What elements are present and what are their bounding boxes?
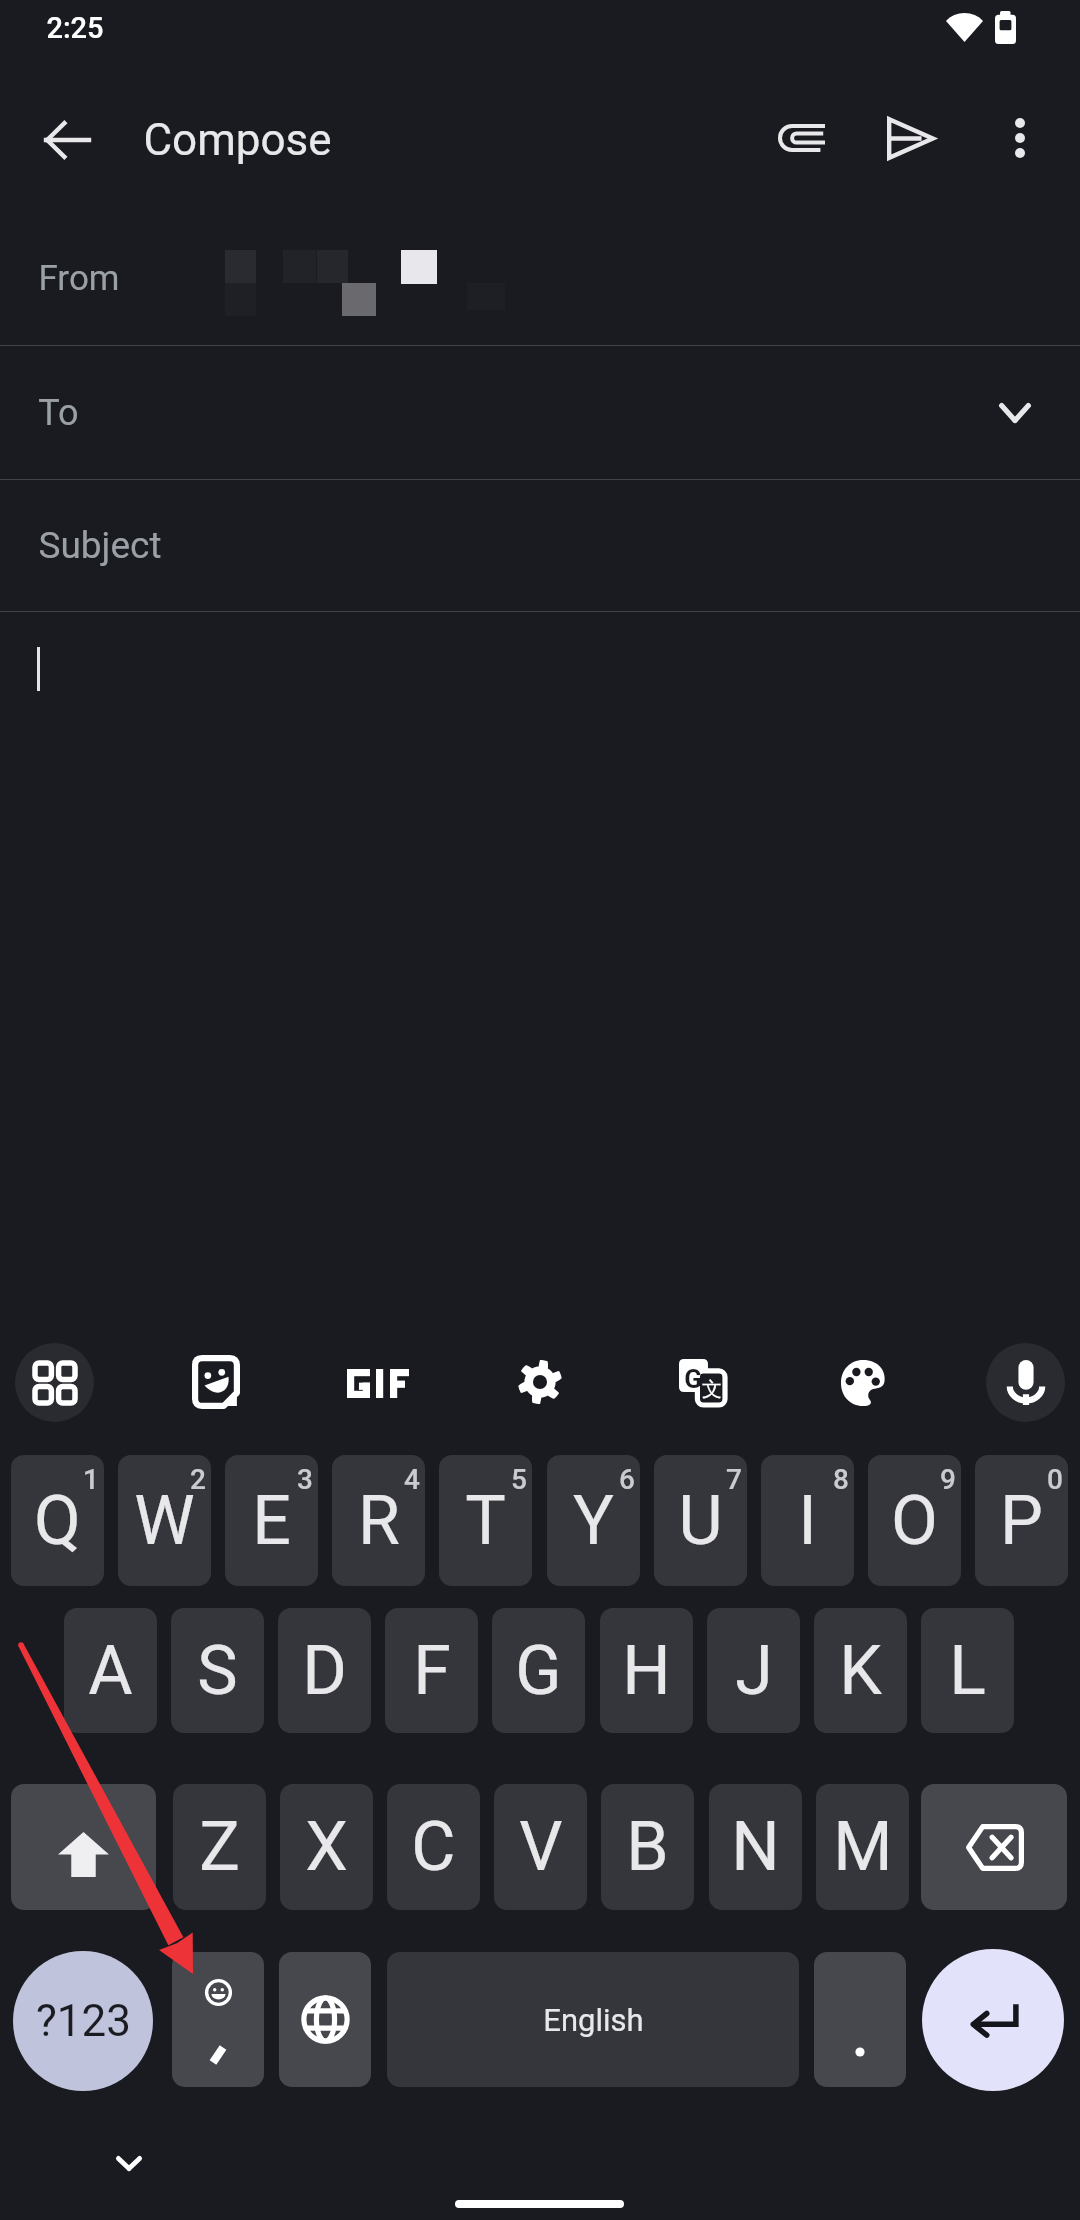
staticText: W — [134, 1481, 195, 1561]
button[interactable]: D — [278, 1608, 371, 1733]
button[interactable]: H — [600, 1608, 693, 1733]
other: Expand recipients — [979, 377, 1051, 449]
button[interactable]: 1 — [11, 1455, 104, 1586]
staticText: B — [626, 1807, 669, 1887]
staticText: Y — [573, 1481, 614, 1561]
staticText: 8 — [833, 1463, 849, 1496]
staticText: 3 — [297, 1463, 313, 1496]
staticText: X — [305, 1807, 348, 1887]
button[interactable]: Back — [23, 96, 111, 184]
button[interactable]: Attach file — [757, 94, 845, 182]
button[interactable]: 2 — [118, 1455, 211, 1586]
button[interactable]: L — [921, 1608, 1014, 1733]
button[interactable]: GIF — [342, 1347, 414, 1419]
staticText: G — [684, 1364, 702, 1390]
staticText: From — [38, 258, 120, 299]
staticText: 0 — [1047, 1463, 1063, 1496]
button[interactable]: M — [816, 1784, 909, 1910]
button[interactable]: N — [709, 1784, 802, 1910]
button[interactable]: Voice input — [986, 1343, 1065, 1422]
staticText: 2 — [190, 1463, 206, 1496]
staticText: G — [515, 1631, 562, 1711]
staticText: H — [622, 1631, 671, 1711]
staticText: I — [798, 1481, 817, 1561]
button[interactable]: Open keyboard features — [15, 1343, 94, 1422]
staticText: O — [891, 1481, 938, 1561]
button[interactable]: More options — [976, 94, 1064, 182]
staticText: V — [519, 1807, 563, 1887]
staticText: D — [302, 1631, 347, 1711]
button[interactable]: C — [387, 1784, 480, 1910]
staticText: To — [38, 392, 79, 434]
button[interactable]: B — [601, 1784, 694, 1910]
staticText: 1 — [83, 1463, 99, 1496]
button[interactable] — [814, 1952, 906, 2087]
button[interactable]: To — [0, 346, 1080, 479]
staticText: U — [678, 1481, 723, 1561]
staticText: J — [735, 1631, 773, 1711]
staticText: S — [197, 1631, 238, 1711]
button[interactable]: S — [171, 1608, 264, 1733]
staticText: ?123 — [36, 1995, 131, 2047]
staticText: Q — [34, 1481, 81, 1561]
staticText: 4 — [404, 1463, 420, 1496]
button[interactable]: K — [814, 1608, 907, 1733]
button[interactable]: X — [280, 1784, 373, 1910]
button[interactable]: G — [492, 1608, 585, 1733]
staticText: 9 — [940, 1463, 956, 1496]
button[interactable]: 5 — [439, 1455, 532, 1586]
staticText: N — [731, 1807, 780, 1887]
staticText: English — [543, 2002, 644, 2038]
button[interactable]: ?123 — [13, 1951, 153, 2091]
button[interactable]: J — [707, 1608, 800, 1733]
staticText: 文 — [702, 1377, 722, 1399]
button[interactable]: 0 — [975, 1455, 1068, 1586]
staticText: 7 — [726, 1463, 742, 1496]
staticText: M — [833, 1807, 893, 1887]
staticText: Z — [199, 1807, 240, 1887]
staticText: A — [88, 1631, 133, 1711]
button[interactable]: Change input language — [279, 1952, 371, 2087]
button[interactable]: V — [494, 1784, 587, 1910]
button[interactable]: Emoji — [172, 1952, 264, 2087]
staticText: E — [252, 1481, 291, 1561]
button[interactable]: 8 — [761, 1455, 854, 1586]
button[interactable]: Stickers — [180, 1346, 252, 1418]
staticText: P — [1000, 1481, 1043, 1561]
button[interactable]: Send — [867, 94, 955, 182]
button[interactable]: 3 — [225, 1455, 318, 1586]
button[interactable]: A — [64, 1608, 157, 1733]
button[interactable]: F — [385, 1608, 478, 1733]
button[interactable]: Shift — [11, 1784, 156, 1910]
button[interactable]: Subject — [0, 480, 1080, 611]
button[interactable]: Enter — [922, 1949, 1064, 2091]
staticText: K — [839, 1631, 882, 1711]
staticText: 2:25 — [46, 11, 104, 45]
staticText: T — [465, 1481, 506, 1561]
button[interactable]: From — [0, 212, 1080, 345]
staticText: C — [411, 1807, 456, 1887]
button[interactable]: Hide keyboard — [98, 2133, 159, 2194]
button[interactable]: Translate — [666, 1346, 738, 1418]
button[interactable]: Settings — [504, 1346, 576, 1418]
staticText: R — [358, 1481, 400, 1561]
button[interactable]: Backspace — [921, 1784, 1067, 1910]
button[interactable]: 7 — [654, 1455, 747, 1586]
button[interactable]: Theme — [827, 1347, 899, 1419]
button[interactable]: 9 — [868, 1455, 961, 1586]
button[interactable]: English — [387, 1952, 799, 2087]
staticText: Compose — [143, 114, 332, 166]
staticText: Subject — [38, 524, 162, 567]
button[interactable]: 4 — [332, 1455, 425, 1586]
button[interactable]: Z — [173, 1784, 266, 1910]
staticText: F — [413, 1631, 451, 1711]
staticText: 5 — [511, 1463, 527, 1496]
staticText: 6 — [619, 1463, 635, 1496]
button[interactable]: 6 — [547, 1455, 640, 1586]
staticText: L — [949, 1631, 986, 1711]
